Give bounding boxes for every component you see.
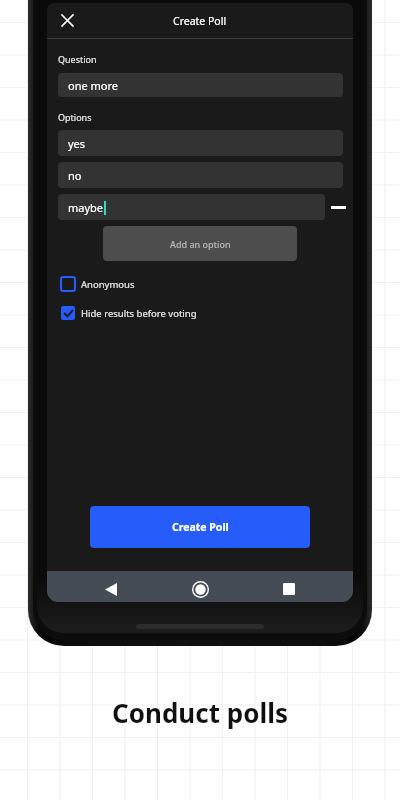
button[interactable]: one more <box>58 73 343 97</box>
staticText: no <box>68 168 82 183</box>
staticText: Hide results before voting <box>81 307 197 320</box>
button[interactable]: Hide results before voting <box>61 306 197 320</box>
staticText: Create Poll <box>172 520 229 534</box>
button[interactable]: Home <box>187 576 213 602</box>
staticText: Add an option <box>170 238 231 250</box>
button[interactable]: no <box>58 162 343 188</box>
button[interactable]: maybe <box>58 194 325 220</box>
staticText: Anonymous <box>81 278 135 291</box>
button[interactable]: Remove option <box>327 196 349 218</box>
staticText: Options <box>58 111 92 123</box>
button[interactable]: yes <box>58 130 343 156</box>
staticText: Create Poll <box>173 14 227 28</box>
staticText: maybe <box>68 200 104 215</box>
button[interactable]: Back <box>98 576 124 602</box>
button[interactable]: Create Poll <box>90 506 310 548</box>
staticText: yes <box>68 136 86 151</box>
button[interactable]: Anonymous <box>61 277 135 291</box>
staticText: one more <box>68 78 118 93</box>
button[interactable]: Recents <box>276 576 302 602</box>
button[interactable]: Close <box>58 11 77 30</box>
staticText: Conduct polls <box>112 695 288 730</box>
staticText: Question <box>58 53 97 65</box>
button[interactable]: Add an option <box>103 226 297 261</box>
